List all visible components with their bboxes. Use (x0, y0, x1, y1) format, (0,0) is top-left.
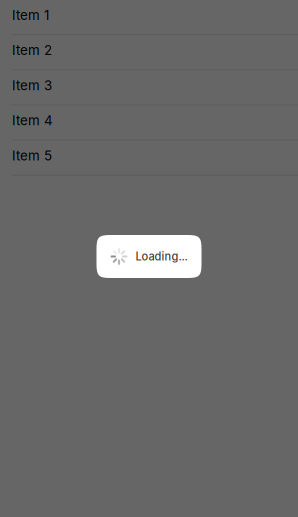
button[interactable]: Item 4 (0, 105, 298, 140)
staticText: Item 5 (12, 147, 52, 164)
staticText: Loading... (135, 250, 187, 263)
button[interactable]: Item 1 (0, 0, 298, 35)
button[interactable]: Item 3 (0, 70, 298, 105)
button[interactable]: Item 5 (0, 140, 298, 176)
staticText: Item 3 (12, 77, 52, 93)
staticText: Item 1 (12, 7, 49, 23)
button[interactable]: Item 2 (0, 35, 298, 70)
staticText: Item 2 (12, 42, 52, 58)
staticText: Item 4 (12, 112, 53, 128)
